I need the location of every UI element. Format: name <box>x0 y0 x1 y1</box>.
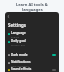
staticText: English <box>11 35 20 38</box>
staticText: Language <box>11 31 26 35</box>
staticText: Learn AI tools & <box>16 2 48 7</box>
staticText: 20 min / day <box>11 43 25 46</box>
button[interactable]: Back <box>6 14 11 19</box>
staticText: Settings <box>8 22 26 28</box>
staticText: Daily goal <box>11 39 26 43</box>
staticText: Dark mode <box>11 53 28 57</box>
staticText: Sound effects <box>11 67 32 71</box>
button[interactable]: Sound effects <box>6 67 58 72</box>
staticText: Daily reminders <box>11 64 29 67</box>
staticText: Notifications <box>11 60 31 64</box>
button[interactable]: Toggle off <box>52 69 56 71</box>
button[interactable]: Daily goal <box>6 38 58 46</box>
button[interactable]: Dark mode <box>6 51 58 59</box>
button[interactable]: Language <box>6 30 58 38</box>
button[interactable]: Notifications <box>6 59 58 67</box>
staticText: languages <box>22 7 43 12</box>
button[interactable]: Toggle on <box>52 54 56 56</box>
